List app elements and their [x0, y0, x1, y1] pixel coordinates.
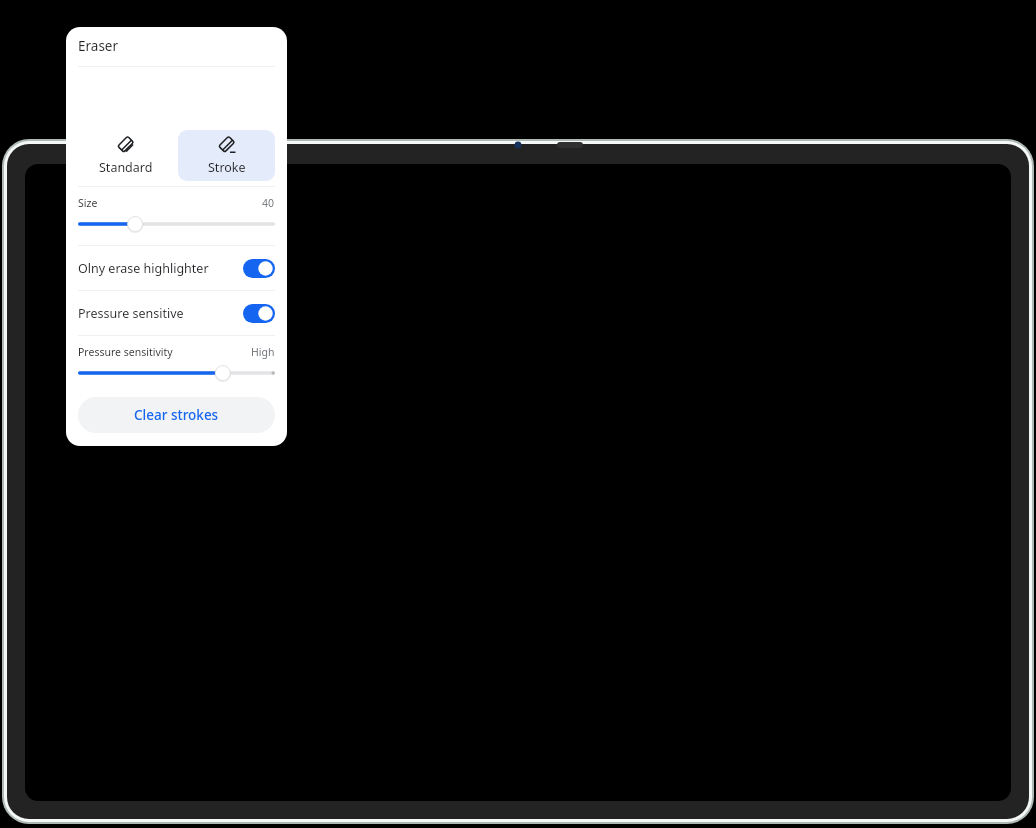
other: Olny erase highlighter [243, 259, 275, 278]
staticText: Clear strokes [134, 406, 219, 424]
staticText: Pressure sensitivity [78, 345, 173, 359]
staticText: Standard [99, 159, 153, 176]
staticText: High [251, 345, 275, 359]
other: Pressure sensitive [243, 304, 275, 323]
staticText: Pressure sensitive [78, 305, 184, 322]
staticText: Olny erase highlighter [78, 260, 209, 277]
staticText: Size [78, 196, 98, 210]
button[interactable]: Standard [78, 130, 174, 181]
staticText: Eraser [78, 37, 119, 55]
button[interactable]: Stroke [178, 130, 275, 181]
button[interactable]: Clear strokes [78, 397, 275, 433]
button[interactable]: Olny erase highlighter [66, 246, 287, 290]
staticText: 40 [262, 196, 275, 210]
button[interactable] [78, 365, 275, 381]
staticText: Stroke [208, 159, 246, 176]
button[interactable]: Pressure sensitive [66, 291, 287, 335]
button[interactable] [78, 216, 275, 232]
